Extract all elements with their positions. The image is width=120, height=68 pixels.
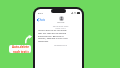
staticText: automatically. Because of — [38, 35, 64, 38]
staticText: today 10:24 — [37, 27, 82, 29]
button[interactable]: Chats — [37, 18, 45, 22]
staticText: nach testic — [13, 50, 29, 53]
staticText: Auto-delete — [12, 45, 29, 49]
staticText: Thursday 08:15 — [37, 44, 82, 46]
staticText: 9:41 — [38, 11, 43, 14]
button[interactable]: Auto-delete — [9, 45, 31, 53]
staticText: tomorrow. — [38, 40, 49, 43]
staticText: that our chat will be deleted — [38, 32, 67, 35]
staticText: cookies, upgrade in your chat — [38, 37, 68, 40]
staticText: Hello! I want to let you know — [38, 29, 67, 32]
staticText: Chats — [38, 18, 45, 22]
staticText: Tap to learn more — [37, 25, 82, 28]
staticText: Michael — [57, 21, 65, 24]
